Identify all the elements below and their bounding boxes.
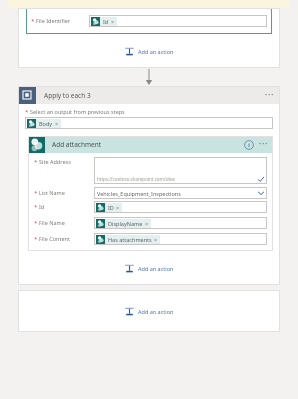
staticText: List Name (39, 189, 65, 196)
button[interactable]: DisplayName (96, 219, 151, 228)
staticText: * (34, 219, 38, 227)
staticText: Add an action (138, 48, 174, 55)
staticText: * (34, 235, 38, 243)
button[interactable]: More options (259, 92, 280, 99)
staticText: Body (39, 120, 53, 127)
staticText: * (34, 189, 38, 197)
button[interactable]: Id (91, 17, 117, 26)
button[interactable]: Add an action (118, 42, 180, 61)
staticText: × (145, 220, 149, 227)
staticText: * (34, 158, 38, 166)
button[interactable]: Add an action (118, 259, 180, 278)
staticText: File Identifier (36, 17, 71, 24)
button[interactable]: Information (244, 140, 254, 150)
button[interactable]: More options (254, 141, 273, 148)
button[interactable]: DisplayName (94, 217, 267, 229)
button[interactable]: Vehicles_Equipment_Inspections (94, 187, 267, 199)
staticText: Select an output from previous steps (30, 108, 125, 115)
staticText: Id (103, 18, 109, 25)
staticText: × (116, 204, 120, 211)
staticText: Add an action (138, 308, 174, 315)
button[interactable]: Add attachment (28, 136, 273, 153)
staticText: • • • (259, 141, 268, 148)
button[interactable]: ID (94, 201, 267, 213)
staticText: Add attachment (52, 140, 102, 149)
staticText: File Content (39, 235, 70, 242)
staticText: Vehicles_Equipment_Inspections (97, 190, 181, 197)
staticText: Apply to each 3 (44, 91, 91, 100)
staticText: DisplayName (108, 220, 143, 227)
button[interactable]: ID (96, 203, 122, 212)
button[interactable]: Has attachments (96, 235, 160, 244)
staticText: × (111, 18, 115, 25)
staticText: × (154, 236, 158, 243)
button[interactable]: Body (25, 117, 273, 129)
button[interactable]: Body (27, 119, 61, 128)
staticText: * (31, 17, 35, 25)
staticText: Id (39, 203, 45, 210)
button[interactable]: Add an action (118, 302, 180, 321)
staticText: https://contoso.sharepoint.com/sites (97, 176, 176, 182)
button[interactable]: Apply to each 3 (18, 86, 280, 104)
staticText: * (34, 203, 38, 211)
staticText: * (25, 108, 29, 116)
staticText: ID (108, 204, 114, 211)
button[interactable]: Has attachments (94, 233, 267, 245)
staticText: • • • (265, 92, 274, 99)
button[interactable]: https://contoso.sharepoint.com/sites (94, 157, 267, 184)
staticText: Has attachments (108, 236, 152, 243)
staticText: Site Address (39, 158, 71, 165)
staticText: × (55, 120, 59, 127)
staticText: File Name (39, 219, 65, 226)
button[interactable]: Id (89, 15, 267, 27)
staticText: Add an action (138, 265, 174, 272)
